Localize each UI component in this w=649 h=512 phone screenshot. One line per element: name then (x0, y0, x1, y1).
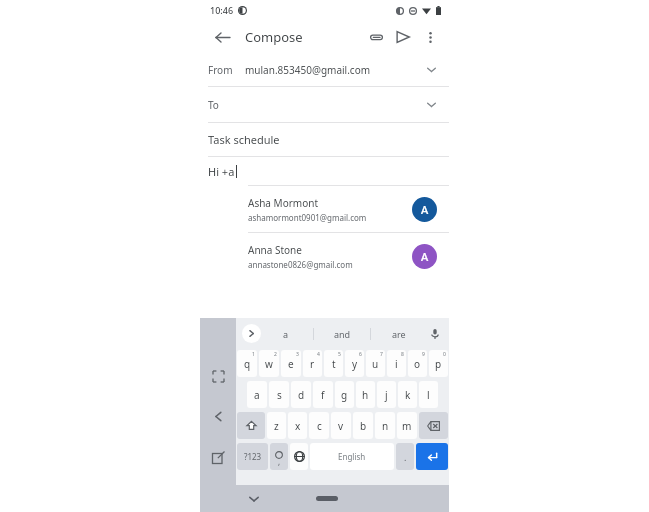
staticText: 0 (443, 351, 446, 358)
button[interactable]: x (288, 412, 307, 439)
button[interactable]: To (200, 87, 449, 122)
button[interactable]: f (313, 381, 333, 408)
button[interactable]: From (200, 53, 449, 86)
staticText: 7 (380, 351, 383, 358)
staticText: 2 (274, 351, 277, 358)
staticText: t (332, 357, 336, 371)
staticText: x (295, 419, 301, 433)
staticText: e (288, 357, 294, 371)
staticText: a (283, 328, 289, 340)
button[interactable]: Floating keyboard (212, 451, 225, 464)
staticText: f (321, 388, 325, 402)
staticText: u (372, 357, 379, 371)
button[interactable]: t (324, 350, 343, 377)
button[interactable]: j (377, 381, 396, 408)
button[interactable]: Enter (416, 443, 448, 470)
button[interactable]: w (259, 350, 279, 377)
button[interactable]: n (375, 412, 395, 439)
button[interactable]: Attach file (363, 24, 389, 50)
button[interactable]: z (267, 412, 286, 439)
button[interactable]: Emoji and comma (270, 443, 288, 470)
staticText: z (274, 419, 279, 433)
staticText: p (435, 357, 442, 371)
button[interactable]: English (310, 443, 394, 470)
button[interactable]: r (303, 350, 322, 377)
staticText: a (254, 388, 260, 402)
button[interactable]: Expand suggestions (242, 324, 261, 343)
staticText: 10:46 (210, 4, 234, 16)
staticText: c (317, 419, 322, 433)
button[interactable]: and (314, 318, 370, 349)
staticText: s (277, 388, 282, 402)
staticText: Asha Mormont (248, 196, 319, 210)
button[interactable]: are (371, 318, 427, 349)
staticText: Compose (245, 28, 303, 46)
button[interactable]: ?123 (237, 443, 268, 470)
staticText: 6 (359, 351, 362, 358)
button[interactable]: . (396, 443, 414, 470)
staticText: q (244, 357, 251, 371)
staticText: 9 (422, 351, 425, 358)
staticText: m (402, 419, 412, 433)
staticText: Anna Stone (248, 243, 302, 257)
button[interactable]: Previous (212, 410, 225, 423)
button[interactable]: l (419, 381, 438, 408)
button[interactable]: p (429, 350, 448, 377)
button[interactable]: Asha Mormont (200, 186, 449, 232)
staticText: annastone0826@gmail.com (248, 259, 353, 270)
button[interactable]: Backspace (419, 412, 448, 439)
staticText: From (208, 63, 233, 77)
staticText: , (278, 456, 281, 467)
button[interactable]: Home (316, 496, 338, 501)
button[interactable]: v (331, 412, 351, 439)
button[interactable]: d (291, 381, 311, 408)
staticText: g (341, 388, 348, 402)
staticText: ashamormont0901@gmail.com (248, 212, 367, 223)
button[interactable]: Anna Stone (200, 233, 449, 279)
staticText: 4 (317, 351, 320, 358)
button[interactable]: Send (389, 23, 417, 51)
button[interactable]: b (353, 412, 373, 439)
staticText: A (421, 202, 429, 217)
button[interactable]: c (309, 412, 329, 439)
button[interactable]: More options (417, 24, 443, 50)
staticText: 8 (401, 351, 404, 358)
staticText: A (421, 249, 429, 264)
button[interactable]: Back (208, 23, 236, 51)
button[interactable]: a (247, 381, 267, 408)
staticText: j (385, 388, 388, 402)
button[interactable]: y (345, 350, 364, 377)
button[interactable]: Voice input (425, 324, 445, 344)
button[interactable]: g (335, 381, 354, 408)
staticText: y (352, 357, 358, 371)
button[interactable]: Task schedule (200, 123, 449, 156)
button[interactable]: h (356, 381, 375, 408)
staticText: v (338, 419, 344, 433)
button[interactable]: q (237, 350, 257, 377)
button[interactable]: e (281, 350, 301, 377)
staticText: d (298, 388, 305, 402)
button[interactable]: k (398, 381, 417, 408)
staticText: w (265, 357, 273, 371)
button[interactable]: Shift (237, 412, 265, 439)
staticText: o (414, 357, 421, 371)
button[interactable]: o (408, 350, 427, 377)
staticText: ?123 (244, 451, 262, 462)
button[interactable]: m (397, 412, 417, 439)
staticText: 3 (296, 351, 299, 358)
staticText: n (382, 419, 389, 433)
button[interactable]: s (269, 381, 289, 408)
button[interactable]: a (258, 318, 313, 349)
button[interactable]: Change language (290, 443, 308, 470)
staticText: are (392, 328, 406, 340)
staticText: b (360, 419, 367, 433)
staticText: To (208, 98, 219, 112)
staticText: l (427, 388, 430, 402)
button[interactable]: i (387, 350, 406, 377)
staticText: 1 (252, 351, 255, 358)
staticText: and (334, 328, 351, 340)
button[interactable]: Resize keyboard (212, 370, 225, 383)
staticText: k (405, 388, 411, 402)
button[interactable]: Hide keyboard (248, 493, 260, 505)
button[interactable]: u (366, 350, 385, 377)
